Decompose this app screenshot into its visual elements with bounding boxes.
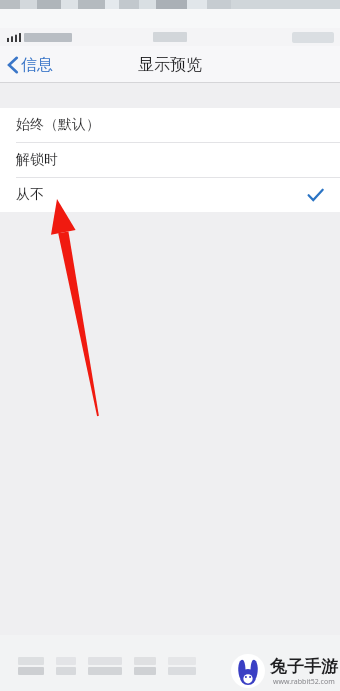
staticText: 始终（默认） — [16, 116, 100, 134]
staticText: 解锁时 — [16, 151, 58, 169]
staticText: 兔子手游 — [270, 656, 338, 677]
button[interactable]: 解锁时 — [0, 143, 340, 177]
button[interactable]: 始终（默认） — [0, 108, 340, 142]
staticText: 显示预览 — [138, 55, 202, 75]
button[interactable]: 信息 — [0, 46, 63, 83]
button[interactable]: 从不 — [0, 178, 340, 212]
staticText: 从不 — [16, 186, 44, 204]
staticText: www.rabbit52.com — [273, 677, 335, 687]
staticText: 信息 — [21, 55, 53, 75]
